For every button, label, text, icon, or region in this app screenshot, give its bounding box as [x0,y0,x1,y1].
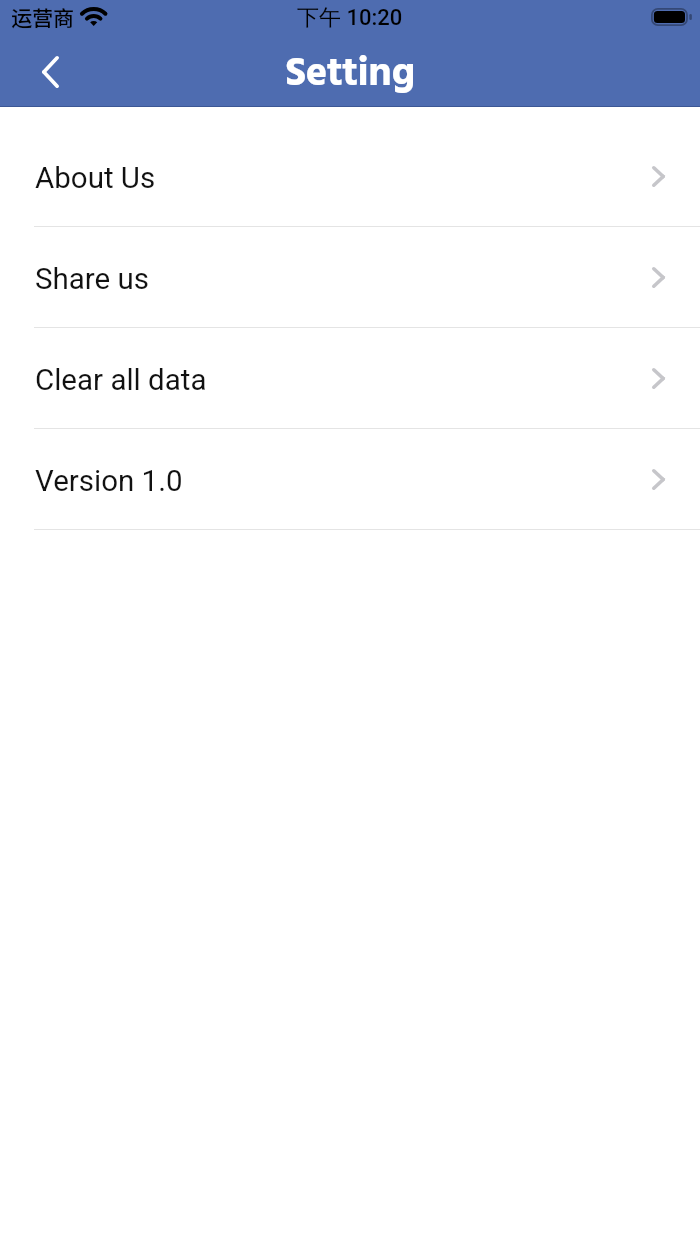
staticText: Clear all data [35,363,652,398]
button[interactable]: Version 1.0 [0,429,700,530]
staticText: 下午 10:20 [297,4,403,32]
button[interactable]: Back [0,36,101,107]
staticText: Setting [285,42,415,107]
button[interactable]: Clear all data [0,328,700,429]
staticText: Share us [35,262,652,297]
staticText: Version 1.0 [35,464,652,499]
staticText: About Us [35,161,652,196]
button[interactable]: Share us [0,227,700,328]
staticText: 运营商 [11,2,74,32]
button[interactable]: About Us [0,126,700,227]
